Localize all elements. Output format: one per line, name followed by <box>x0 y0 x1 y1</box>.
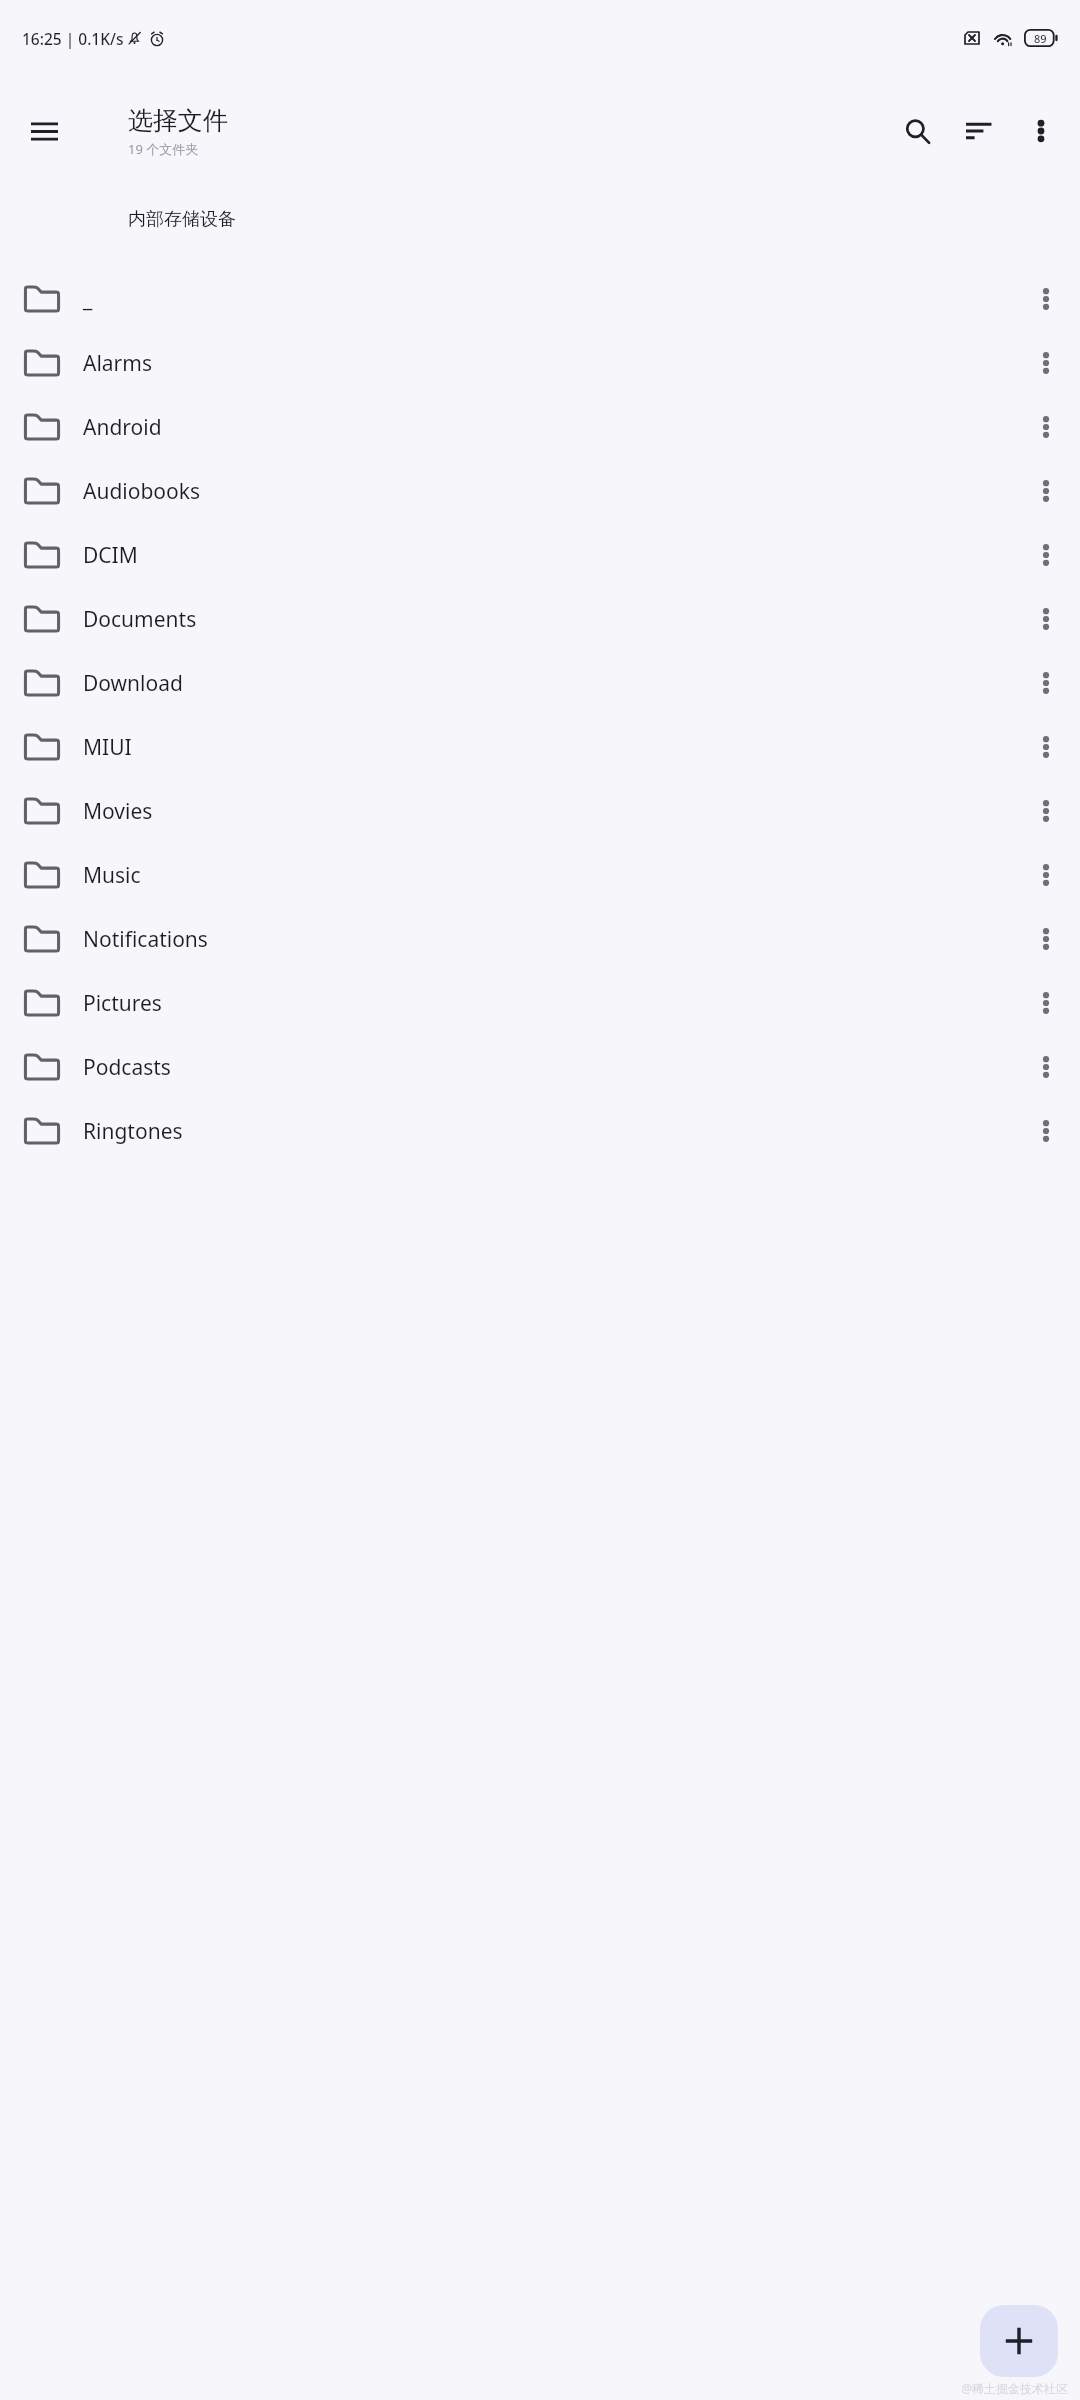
button[interactable]: Download <box>0 651 1080 715</box>
button[interactable]: Music <box>0 843 1080 907</box>
button[interactable]: More options for _ <box>1018 271 1074 327</box>
button[interactable]: Alarms <box>0 331 1080 395</box>
button[interactable]: Notifications <box>0 907 1080 971</box>
staticText: _ <box>83 285 1018 314</box>
button[interactable]: MIUI <box>0 715 1080 779</box>
button[interactable]: More options for Podcasts <box>1018 1039 1074 1095</box>
button[interactable]: Search <box>886 100 948 162</box>
button[interactable]: Ringtones <box>0 1099 1080 1163</box>
staticText: 89 <box>1034 31 1047 46</box>
staticText: Pictures <box>83 989 1018 1018</box>
button[interactable]: Audiobooks <box>0 459 1080 523</box>
staticText: Android <box>83 413 1018 442</box>
button[interactable]: More options for Movies <box>1018 783 1074 839</box>
button[interactable]: More options for MIUI <box>1018 719 1074 775</box>
button[interactable]: Documents <box>0 587 1080 651</box>
button[interactable]: More options for Documents <box>1018 591 1074 647</box>
button[interactable]: Android <box>0 395 1080 459</box>
button[interactable]: Podcasts <box>0 1035 1080 1099</box>
button[interactable]: More options for Android <box>1018 399 1074 455</box>
button[interactable]: Movies <box>0 779 1080 843</box>
staticText: Documents <box>83 605 1018 634</box>
staticText: 内部存储设备 <box>128 208 236 231</box>
button[interactable]: Menu <box>12 99 76 163</box>
staticText: Alarms <box>83 349 1018 378</box>
button[interactable]: More options for Ringtones <box>1018 1103 1074 1159</box>
staticText: Ringtones <box>83 1117 1018 1146</box>
button[interactable]: More options for Pictures <box>1018 975 1074 1031</box>
staticText: Music <box>83 861 1018 890</box>
button[interactable]: Add <box>980 2305 1058 2377</box>
staticText: 19 个文件夹 <box>128 140 199 158</box>
staticText: Notifications <box>83 925 1018 954</box>
button[interactable]: _ <box>0 267 1080 331</box>
button[interactable]: More options for Notifications <box>1018 911 1074 967</box>
button[interactable]: More options for Alarms <box>1018 335 1074 391</box>
button[interactable]: More options for Download <box>1018 655 1074 711</box>
staticText: MIUI <box>83 733 1018 762</box>
staticText: Podcasts <box>83 1053 1018 1082</box>
button[interactable]: More options for Audiobooks <box>1018 463 1074 519</box>
staticText: Movies <box>83 797 1018 826</box>
button[interactable]: Pictures <box>0 971 1080 1035</box>
button[interactable]: DCIM <box>0 523 1080 587</box>
button[interactable]: Sort <box>948 100 1010 162</box>
button[interactable]: More options <box>1010 100 1072 162</box>
button[interactable]: More options for DCIM <box>1018 527 1074 583</box>
staticText: Download <box>83 669 1018 698</box>
button[interactable]: More options for Music <box>1018 847 1074 903</box>
staticText: 选择文件 <box>128 105 228 136</box>
staticText: 16:25 | 0.1K/s <box>22 28 124 49</box>
staticText: Audiobooks <box>83 477 1018 506</box>
staticText: DCIM <box>83 541 1018 570</box>
staticText: @稀土掘金技术社区 <box>961 2380 1068 2396</box>
